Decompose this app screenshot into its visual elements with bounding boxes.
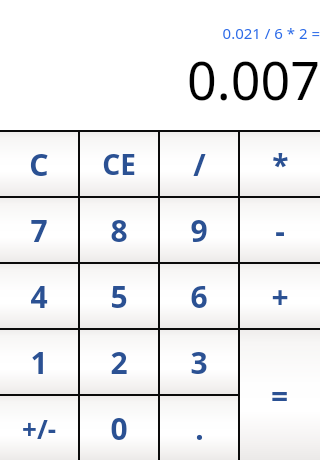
- staticText: *: [272, 144, 289, 185]
- staticText: /: [193, 144, 206, 185]
- button[interactable]: 9: [160, 198, 238, 262]
- staticText: CE: [102, 145, 136, 183]
- staticText: 3: [190, 342, 208, 383]
- button[interactable]: +: [240, 264, 320, 328]
- staticText: 0.007: [187, 44, 320, 115]
- staticText: 2: [110, 342, 128, 383]
- staticText: -: [275, 210, 285, 251]
- button[interactable]: C: [0, 132, 78, 196]
- button[interactable]: 0: [80, 396, 158, 460]
- button[interactable]: 1: [0, 330, 78, 394]
- staticText: C: [29, 144, 49, 185]
- button[interactable]: /: [160, 132, 238, 196]
- staticText: 7: [30, 210, 48, 251]
- staticText: +/-: [22, 411, 56, 446]
- button[interactable]: 3: [160, 330, 238, 394]
- button[interactable]: .: [160, 396, 238, 460]
- button[interactable]: 6: [160, 264, 238, 328]
- staticText: 0: [110, 408, 128, 449]
- staticText: =: [271, 375, 289, 416]
- staticText: 9: [190, 210, 208, 251]
- staticText: 0.021 / 6 * 2 =: [222, 23, 320, 43]
- button[interactable]: 2: [80, 330, 158, 394]
- button[interactable]: 8: [80, 198, 158, 262]
- staticText: 1: [30, 342, 48, 383]
- button[interactable]: Equals: [240, 330, 320, 460]
- button[interactable]: CE: [80, 132, 158, 196]
- button[interactable]: +/-: [0, 396, 78, 460]
- button[interactable]: 4: [0, 264, 78, 328]
- staticText: .: [195, 408, 204, 449]
- staticText: 4: [30, 276, 48, 317]
- staticText: 6: [190, 276, 208, 317]
- button[interactable]: 7: [0, 198, 78, 262]
- button[interactable]: *: [240, 132, 320, 196]
- staticText: 8: [110, 210, 128, 251]
- staticText: 5: [110, 276, 128, 317]
- button[interactable]: 5: [80, 264, 158, 328]
- button[interactable]: -: [240, 198, 320, 262]
- staticText: +: [271, 276, 289, 317]
